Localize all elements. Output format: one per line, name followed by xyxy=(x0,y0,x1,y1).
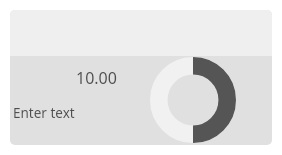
staticText: Enter text xyxy=(13,104,75,122)
button[interactable]: Enter text xyxy=(10,100,142,136)
staticText: 10.00 xyxy=(76,67,117,89)
other: Progress, 50 percent xyxy=(150,57,236,143)
